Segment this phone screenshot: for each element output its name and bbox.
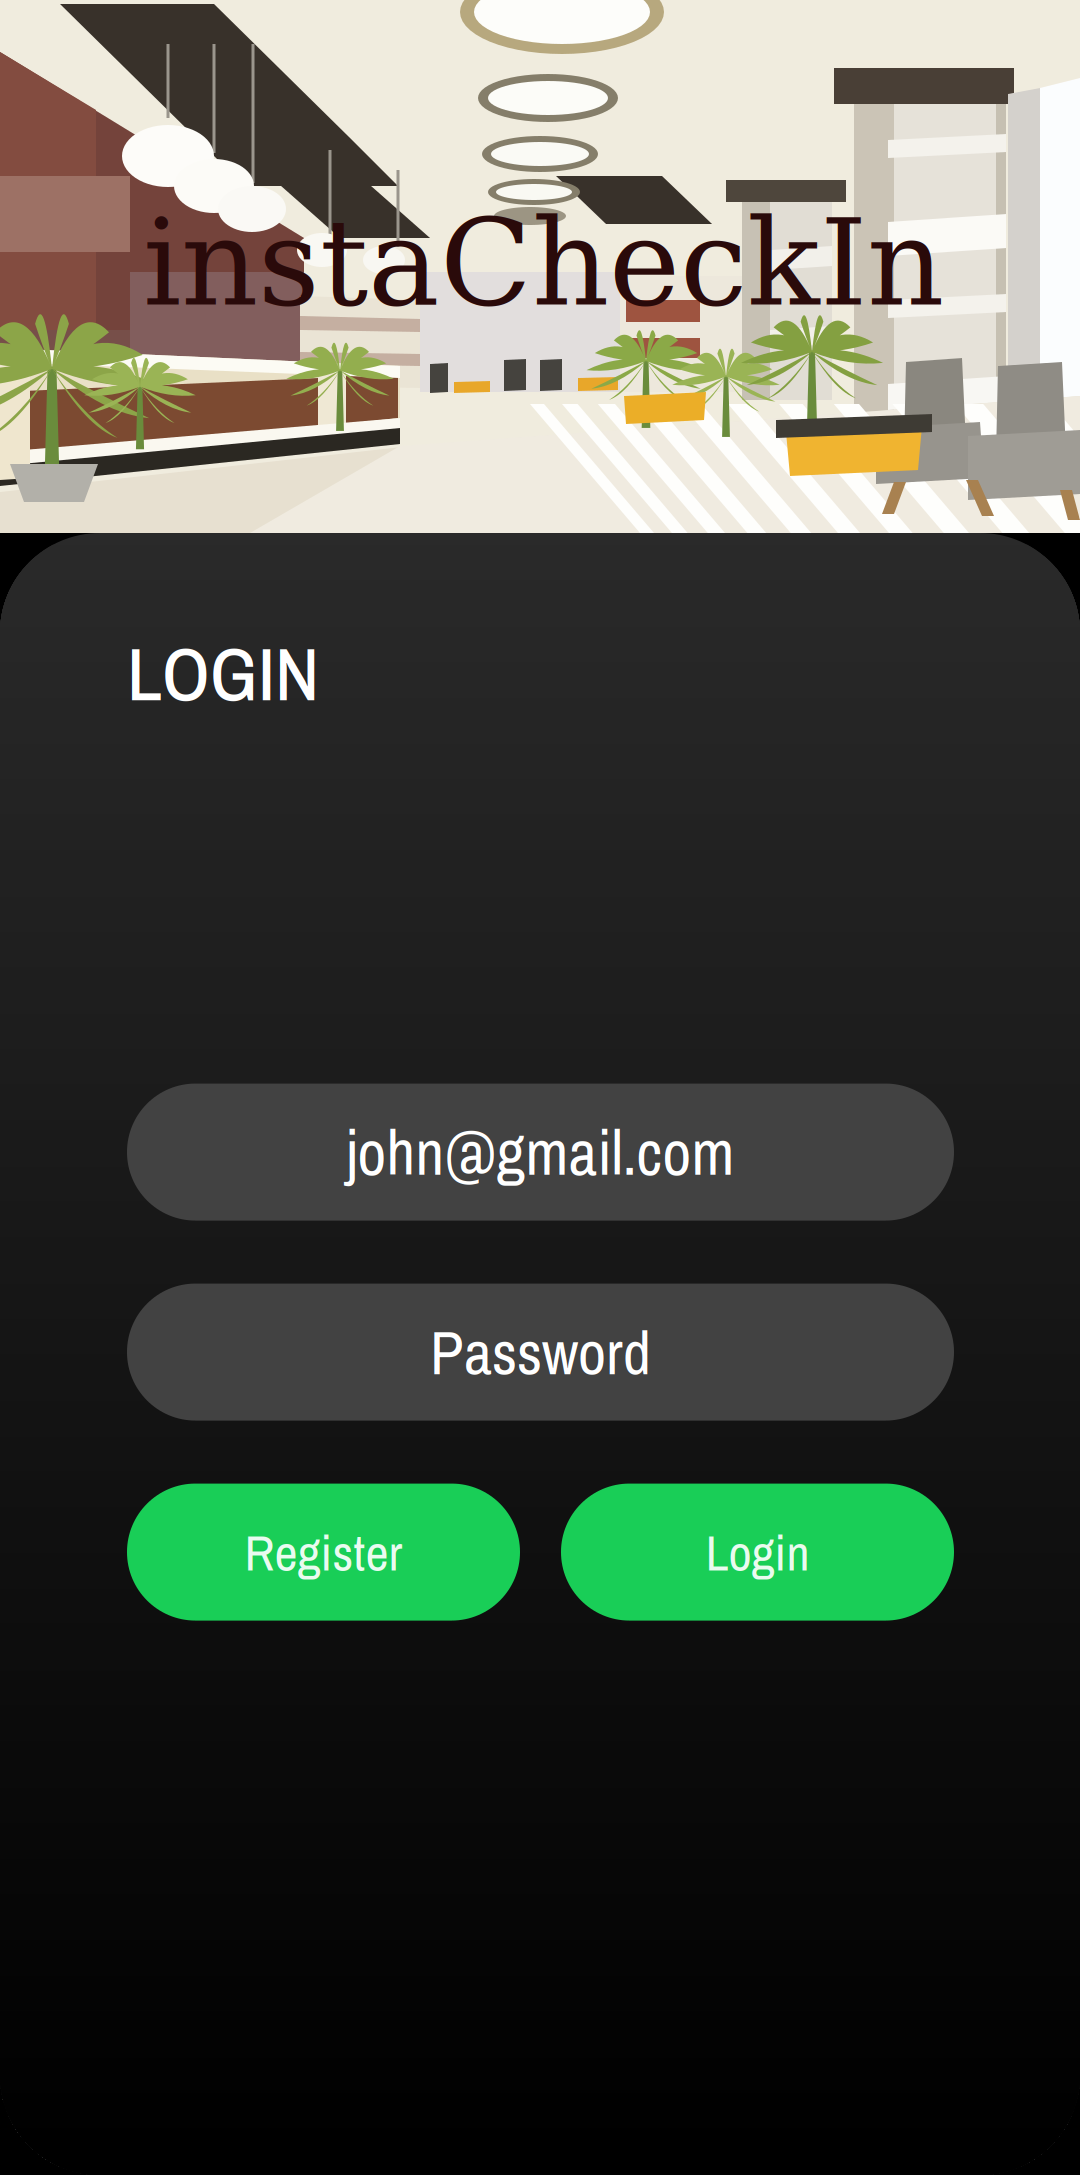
staticText: Login (705, 1518, 809, 1586)
staticText: LOGIN (127, 623, 319, 724)
button[interactable]: john@gmail.com (127, 1084, 954, 1221)
staticText: Register (244, 1518, 402, 1586)
staticText: instaCheckIn (143, 193, 944, 333)
button[interactable]: Password (127, 1284, 954, 1421)
button[interactable]: Register (127, 1484, 520, 1621)
staticText: Password (430, 1311, 651, 1393)
button[interactable]: Login (561, 1484, 954, 1621)
staticText: john@gmail.com (346, 1110, 734, 1194)
